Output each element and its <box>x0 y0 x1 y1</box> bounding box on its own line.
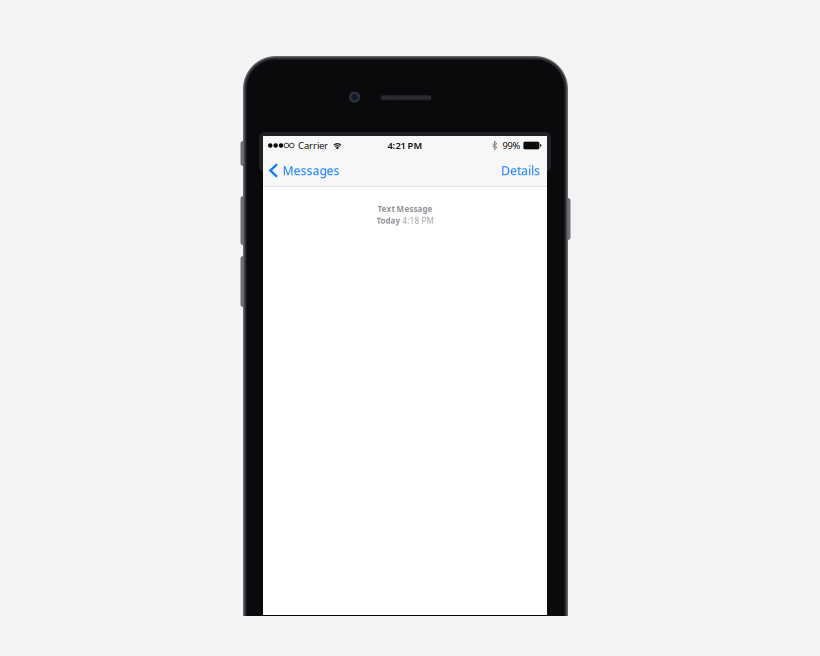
button[interactable]: Details <box>501 155 547 186</box>
staticText: 4:18 PM <box>402 215 433 226</box>
button[interactable]: Messages <box>263 155 339 186</box>
staticText: Text Message <box>377 204 432 214</box>
staticText: Today <box>376 215 400 226</box>
staticText: 4:21 PM <box>387 139 422 152</box>
staticText: Details <box>501 162 540 178</box>
staticText: Carrier <box>298 139 328 152</box>
staticText: Messages <box>282 162 339 178</box>
staticText: 99% <box>502 139 520 152</box>
